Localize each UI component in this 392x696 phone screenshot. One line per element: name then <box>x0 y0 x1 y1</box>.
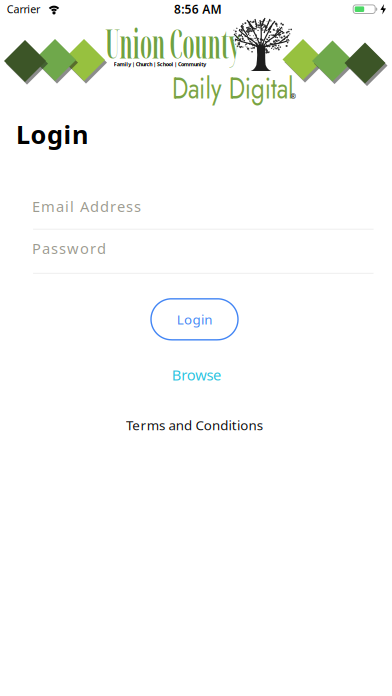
button[interactable]: Login <box>151 299 238 340</box>
textField[interactable]: Password <box>32 238 372 258</box>
staticText: Email Address <box>32 196 141 216</box>
staticText: Union County <box>60 16 285 70</box>
staticText: Password <box>32 238 106 258</box>
staticText: Login <box>177 310 212 328</box>
staticText: Family | Church | School | Community <box>114 61 206 68</box>
staticText: ® <box>290 92 296 101</box>
staticText: Carrier <box>7 2 40 16</box>
staticText: Login <box>16 117 88 151</box>
staticText: Terms and Conditions <box>126 416 263 434</box>
button[interactable]: Browse <box>172 365 221 385</box>
button[interactable]: Terms and Conditions <box>126 416 263 434</box>
textField[interactable]: Email Address <box>32 196 372 216</box>
staticText: Browse <box>172 365 221 385</box>
staticText: 8:56 AM <box>174 1 221 17</box>
staticText: Daily Digital <box>157 66 309 110</box>
